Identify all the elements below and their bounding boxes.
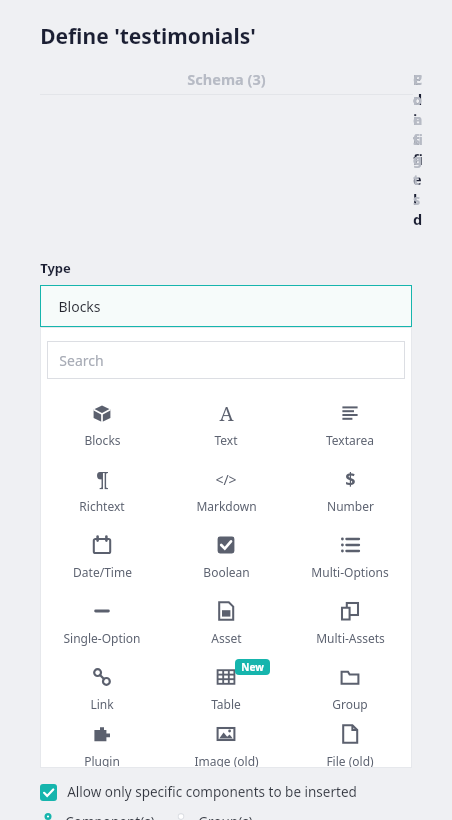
staticText: New xyxy=(241,660,264,674)
staticText: $ xyxy=(345,467,356,492)
staticText: Single-Option xyxy=(63,630,141,646)
staticText: Asset xyxy=(211,630,242,646)
button[interactable]: Group xyxy=(288,655,412,721)
staticText: Image (old) xyxy=(194,753,259,768)
staticText: A xyxy=(219,400,234,426)
button[interactable]: New xyxy=(164,655,288,721)
button[interactable]: Date/Time xyxy=(40,523,164,589)
staticText: Type xyxy=(40,259,71,277)
staticText: Date/Time xyxy=(73,564,132,580)
button[interactable]: Multi-Assets xyxy=(288,589,412,655)
button[interactable]: Search xyxy=(47,341,405,379)
staticText: Multi-Assets xyxy=(316,630,385,646)
button[interactable]: A xyxy=(164,391,288,457)
button[interactable]: File (old) xyxy=(288,721,412,768)
staticText: Multi-Options xyxy=(311,564,389,580)
staticText: Markdown xyxy=(196,498,257,514)
button[interactable]: ¶ xyxy=(40,457,164,523)
staticText: </> xyxy=(215,470,237,489)
staticText: Plugin xyxy=(84,753,120,768)
staticText: Number xyxy=(327,498,374,514)
button[interactable]: Boolean xyxy=(164,523,288,589)
button[interactable]: $ xyxy=(288,457,412,523)
button[interactable]: Schema (3) xyxy=(40,69,413,95)
staticText: Boolean xyxy=(203,564,250,580)
button[interactable]: Blocks xyxy=(40,285,412,327)
button[interactable]: Link xyxy=(40,655,164,721)
staticText: Richtext xyxy=(79,498,125,514)
button[interactable]: Allow only specific components to be ins… xyxy=(40,783,357,801)
staticText: Text xyxy=(214,432,238,448)
button[interactable]: </> xyxy=(164,457,288,523)
staticText: Group xyxy=(332,696,368,712)
staticText: Textarea xyxy=(326,432,374,448)
button[interactable]: Image (old) xyxy=(164,721,288,768)
staticText: File (old) xyxy=(326,753,374,768)
staticText: Component(s) xyxy=(65,813,155,820)
button[interactable]: Group(s) xyxy=(173,813,253,820)
button[interactable]: Component(s) xyxy=(40,813,155,820)
button[interactable]: Single-Option xyxy=(40,589,164,655)
staticText: Blocks xyxy=(58,297,101,316)
button[interactable]: Blocks xyxy=(40,391,164,457)
staticText: Group(s) xyxy=(198,813,253,820)
staticText: Search xyxy=(59,351,104,370)
staticText: Table xyxy=(211,696,241,712)
staticText: Allow only specific components to be ins… xyxy=(67,783,357,801)
button[interactable]: Multi-Options xyxy=(288,523,412,589)
button[interactable]: Asset xyxy=(164,589,288,655)
button[interactable]: Textarea xyxy=(288,391,412,457)
staticText: ¶ xyxy=(96,466,109,492)
staticText: Link xyxy=(90,696,114,712)
staticText: Blocks xyxy=(84,432,121,448)
staticText: Schema (3) xyxy=(187,69,266,89)
staticText: Define 'testimonials' xyxy=(40,22,256,51)
button[interactable]: Plugin xyxy=(40,721,164,768)
